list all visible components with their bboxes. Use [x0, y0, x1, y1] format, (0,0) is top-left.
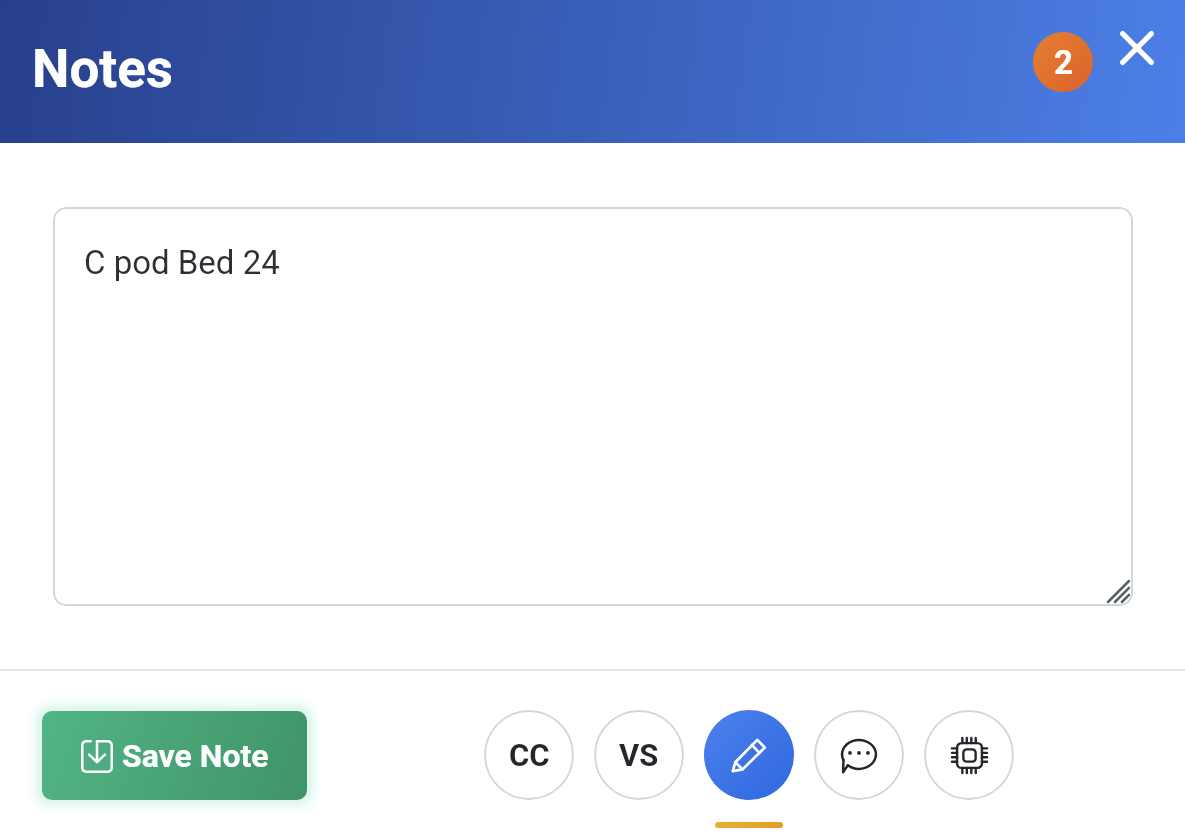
staticText: CC	[509, 737, 550, 773]
button[interactable]: VS	[594, 710, 684, 800]
staticText: 2	[1054, 43, 1073, 82]
button[interactable]: Save Note	[42, 711, 307, 800]
staticText: C pod Bed 24	[84, 243, 280, 282]
button[interactable]: 2 notes	[1033, 32, 1093, 92]
staticText: VS	[619, 737, 659, 773]
button[interactable]: CC	[484, 710, 574, 800]
button[interactable]: Edit note	[704, 710, 794, 800]
button[interactable]: Close	[1113, 24, 1161, 72]
button[interactable]: Device	[924, 710, 1014, 800]
button[interactable]: Comments	[814, 710, 904, 800]
staticText: Save Note	[122, 737, 269, 775]
staticText: Notes	[32, 38, 174, 100]
button[interactable]: C pod Bed 24	[53, 207, 1133, 606]
button[interactable]: More actions	[715, 822, 783, 828]
